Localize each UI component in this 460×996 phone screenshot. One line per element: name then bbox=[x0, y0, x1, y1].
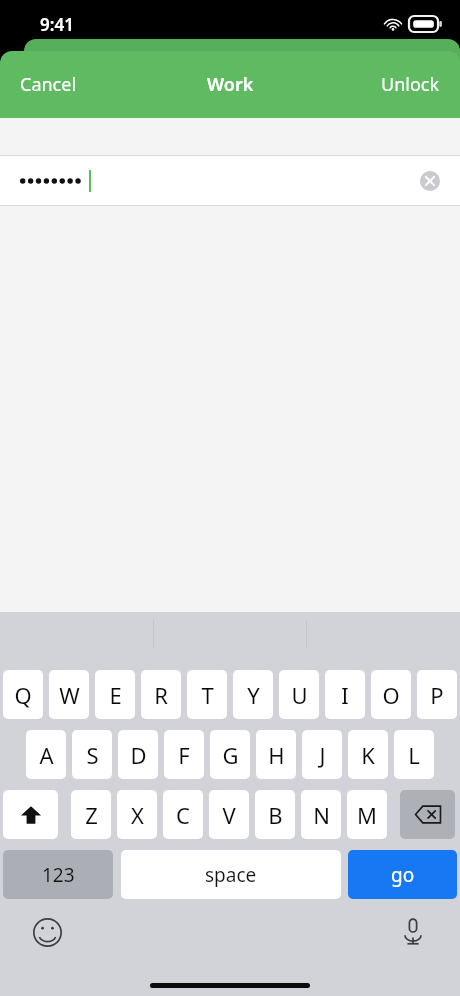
button[interactable]: 123 bbox=[3, 850, 113, 899]
button[interactable]: Q bbox=[3, 670, 43, 719]
button[interactable]: O bbox=[371, 670, 411, 719]
button[interactable]: S bbox=[72, 730, 112, 779]
button[interactable]: Unlock bbox=[361, 62, 460, 107]
button[interactable]: P bbox=[417, 670, 457, 719]
button[interactable]: Clear text bbox=[420, 171, 440, 191]
staticText: L bbox=[408, 740, 420, 770]
staticText: Cancel bbox=[20, 72, 77, 97]
button[interactable]: D bbox=[118, 730, 158, 779]
button[interactable]: V bbox=[209, 790, 249, 839]
staticText: X bbox=[131, 800, 144, 830]
staticText: Y bbox=[247, 680, 260, 710]
button[interactable]: Clear text bbox=[0, 156, 460, 205]
staticText: C bbox=[176, 800, 190, 830]
button[interactable]: N bbox=[301, 790, 341, 839]
staticText: R bbox=[154, 680, 168, 710]
staticText: H bbox=[268, 740, 285, 770]
staticText: N bbox=[313, 800, 330, 830]
button[interactable]: Dictation bbox=[394, 913, 432, 951]
button[interactable]: K bbox=[348, 730, 388, 779]
staticText: T bbox=[201, 680, 214, 710]
button[interactable]: Z bbox=[71, 790, 111, 839]
staticText: A bbox=[39, 740, 54, 770]
button[interactable]: space bbox=[121, 850, 341, 899]
button[interactable]: L bbox=[394, 730, 434, 779]
staticText: V bbox=[222, 800, 236, 830]
staticText: W bbox=[59, 680, 80, 710]
button[interactable]: J bbox=[302, 730, 342, 779]
staticText: P bbox=[430, 680, 444, 710]
staticText: U bbox=[291, 680, 308, 710]
staticText: go bbox=[391, 862, 415, 888]
button[interactable]: A bbox=[26, 730, 66, 779]
button[interactable]: Shift bbox=[3, 790, 58, 839]
staticText: K bbox=[361, 740, 375, 770]
button[interactable]: E bbox=[95, 670, 135, 719]
staticText: S bbox=[86, 740, 99, 770]
button[interactable]: Cancel bbox=[0, 62, 97, 107]
button[interactable]: W bbox=[49, 670, 89, 719]
staticText: D bbox=[130, 740, 147, 770]
button[interactable]: B bbox=[255, 790, 295, 839]
button[interactable]: Emoji keyboard bbox=[28, 913, 66, 951]
staticText: M bbox=[357, 800, 377, 830]
staticText: 123 bbox=[42, 862, 75, 888]
staticText: F bbox=[178, 740, 190, 770]
button[interactable]: Y bbox=[233, 670, 273, 719]
button[interactable]: I bbox=[325, 670, 365, 719]
button[interactable]: F bbox=[164, 730, 204, 779]
staticText: E bbox=[109, 680, 122, 710]
staticText: O bbox=[382, 680, 400, 710]
button[interactable]: H bbox=[256, 730, 296, 779]
staticText: Unlock bbox=[381, 72, 440, 97]
button[interactable]: Backspace bbox=[400, 790, 455, 839]
staticText: J bbox=[319, 740, 326, 770]
button[interactable]: R bbox=[141, 670, 181, 719]
button[interactable]: go bbox=[348, 850, 457, 899]
button[interactable]: X bbox=[117, 790, 157, 839]
button[interactable]: G bbox=[210, 730, 250, 779]
staticText: Z bbox=[85, 800, 98, 830]
staticText: Work bbox=[207, 72, 254, 97]
button[interactable]: C bbox=[163, 790, 203, 839]
staticText: Q bbox=[14, 680, 32, 710]
staticText: G bbox=[222, 740, 239, 770]
staticText: I bbox=[341, 680, 349, 710]
staticText: B bbox=[268, 800, 283, 830]
button[interactable]: U bbox=[279, 670, 319, 719]
staticText: 9:41 bbox=[40, 13, 74, 36]
button[interactable]: T bbox=[187, 670, 227, 719]
staticText: space bbox=[205, 862, 257, 888]
button[interactable]: M bbox=[347, 790, 387, 839]
